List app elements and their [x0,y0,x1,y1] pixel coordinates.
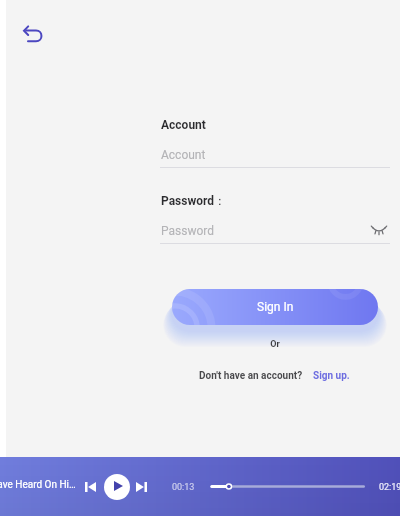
staticText: Account [161,118,206,132]
staticText: Sign In [257,300,294,314]
button[interactable]: Back [22,24,44,46]
button[interactable]: Show password [371,223,387,239]
button[interactable]: Sign up. [313,370,350,382]
staticText: 02:19 [379,482,400,493]
staticText: 00:13 [172,482,195,493]
staticText: Password： [161,193,227,208]
button[interactable]: Next [136,482,147,492]
button[interactable]: Sign In [172,289,378,325]
staticText: Or [172,339,378,350]
staticText: I Have Heard On Hi… [0,479,76,491]
staticText: Account [161,148,206,162]
button[interactable]: Play [104,474,130,500]
staticText: Don't have an account? [199,370,303,382]
button[interactable]: Previous [85,482,96,492]
staticText: Password [161,224,215,238]
